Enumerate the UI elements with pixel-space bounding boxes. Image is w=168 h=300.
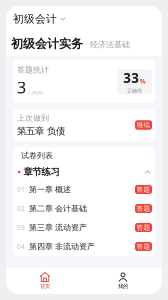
staticText: 答题 [136,223,150,232]
staticText: 03 [17,223,25,232]
staticText: 继续 [136,121,150,129]
button[interactable]: 04 [13,237,155,256]
staticText: 02 [17,204,25,213]
staticText: 第一章 概述 [29,185,71,194]
button[interactable]: 01 [13,180,155,199]
button[interactable]: 初级会计实务 [11,36,83,52]
button[interactable]: 答题 [135,242,152,251]
staticText: 上次做到 [17,113,49,123]
staticText: % [140,77,146,86]
staticText: 答题 [136,204,150,213]
button[interactable]: 答题 [135,185,152,194]
staticText: 第三章 流动资产 [29,223,87,232]
staticText: 01 [17,185,25,194]
button[interactable]: 答题 [135,204,152,213]
staticText: 初级会计实务 [11,36,83,51]
staticText: 第五章 负债 [17,125,65,137]
staticText: 经济法基础 [90,40,130,50]
staticText: 试卷列表 [21,151,53,160]
staticText: 初级会计 [13,12,57,25]
staticText: 第四章 非流动资产 [29,242,95,251]
staticText: 答题 [136,185,150,194]
staticText: / 3690 [28,89,43,96]
button[interactable]: 02 [13,199,155,218]
staticText: 我的 [118,283,128,290]
button[interactable]: 继续 [135,120,152,130]
button[interactable]: 经济法基础 [90,40,130,52]
staticText: 第二章 会计基础 [29,204,87,213]
button[interactable]: 我的 [84,268,162,294]
staticText: 答题 [136,242,150,251]
staticText: 3 [17,77,26,98]
staticText: 04 [17,242,25,251]
staticText: 正确率 [127,88,142,94]
staticText: 首页 [40,283,50,290]
staticText: 答题统计 [17,65,49,75]
button[interactable]: 答题 [135,223,152,232]
button[interactable]: 03 [13,218,155,237]
button[interactable]: 初级会计 [6,6,65,31]
staticText: 章节练习 [23,166,59,178]
staticText: 33 [123,69,139,87]
button[interactable]: 章节练习 [13,164,155,180]
button[interactable]: 首页 [6,268,84,294]
